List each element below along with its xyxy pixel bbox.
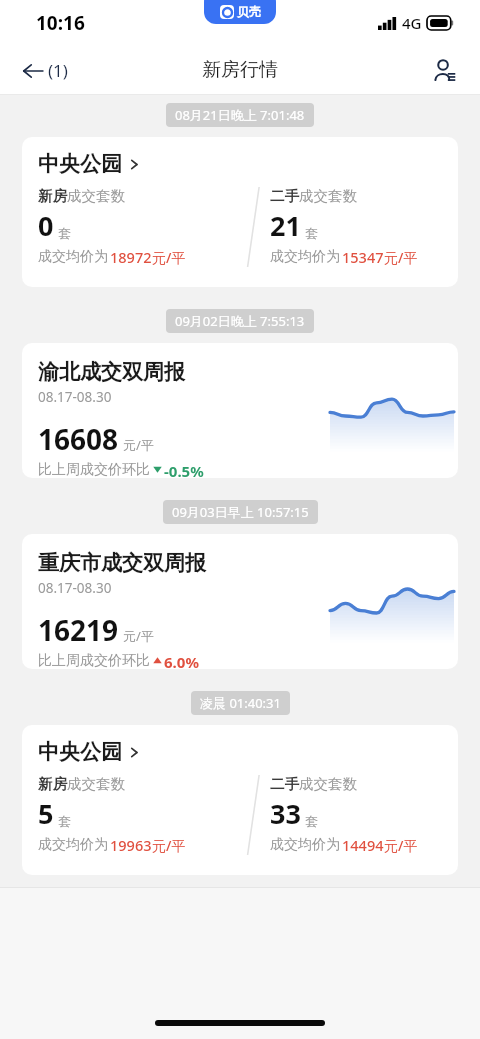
staticText: 二手 [270, 775, 299, 793]
staticText: 成交均价为 [270, 248, 340, 266]
staticText: 成交均价为 [270, 836, 340, 854]
staticText: 14494 [342, 835, 384, 855]
staticText: -0.5% [164, 461, 204, 478]
staticText: 5 [38, 795, 54, 832]
staticText: 比上周成交价环比 [38, 652, 150, 669]
button[interactable]: 中央公园 [22, 137, 458, 287]
staticText: 套 [305, 813, 318, 829]
staticText: 10:16 [36, 10, 85, 36]
staticText: 元/平 [384, 248, 418, 267]
button[interactable]: 中央公园 [22, 725, 458, 875]
staticText: 比上周成交价环比 [38, 461, 150, 478]
staticText: 新房行情 [202, 58, 278, 82]
button[interactable]: Back [14, 53, 76, 88]
staticText: 套 [58, 813, 71, 829]
staticText: 元/平 [152, 836, 186, 855]
button[interactable]: Contacts [426, 52, 462, 88]
staticText: (1) [48, 59, 68, 82]
staticText: 凌晨 01:40:31 [200, 694, 281, 712]
staticText: 4G [402, 13, 422, 33]
staticText: 渝北成交双周报 [38, 359, 185, 385]
staticText: 08月21日晚上 7:01:48 [175, 106, 305, 124]
staticText: 16608 [38, 420, 119, 458]
staticText: 元/平 [384, 836, 418, 855]
staticText: 08.17-08.30 [38, 579, 112, 597]
staticText: 09月03日早上 10:57:15 [172, 503, 309, 521]
staticText: 0 [38, 207, 54, 244]
staticText: 21 [270, 207, 301, 244]
staticText: 元/平 [123, 436, 154, 454]
staticText: 新房 [38, 775, 67, 793]
staticText: 成交套数 [67, 775, 125, 793]
staticText: 18972 [110, 247, 152, 267]
staticText: 16219 [38, 611, 119, 649]
staticText: 6.0% [164, 652, 199, 669]
staticText: 成交套数 [299, 187, 357, 205]
button[interactable]: 渝北成交双周报 [22, 343, 458, 478]
staticText: 09月02日晚上 7:55:13 [175, 312, 305, 330]
staticText: 贝壳 [237, 4, 261, 19]
staticText: 15347 [342, 247, 384, 267]
staticText: 19963 [110, 835, 152, 855]
staticText: 中央公园 [38, 739, 122, 765]
staticText: 二手 [270, 187, 299, 205]
staticText: 成交套数 [67, 187, 125, 205]
staticText: 33 [270, 795, 301, 832]
staticText: 中央公园 [38, 151, 122, 177]
staticText: 成交均价为 [38, 836, 108, 854]
staticText: 08.17-08.30 [38, 388, 112, 406]
staticText: 套 [58, 225, 71, 241]
staticText: 成交套数 [299, 775, 357, 793]
staticText: 重庆市成交双周报 [38, 550, 206, 576]
button[interactable]: 重庆市成交双周报 [22, 534, 458, 669]
staticText: 新房 [38, 187, 67, 205]
staticText: 元/平 [123, 627, 154, 645]
staticText: 元/平 [152, 248, 186, 267]
staticText: 套 [305, 225, 318, 241]
staticText: 成交均价为 [38, 248, 108, 266]
